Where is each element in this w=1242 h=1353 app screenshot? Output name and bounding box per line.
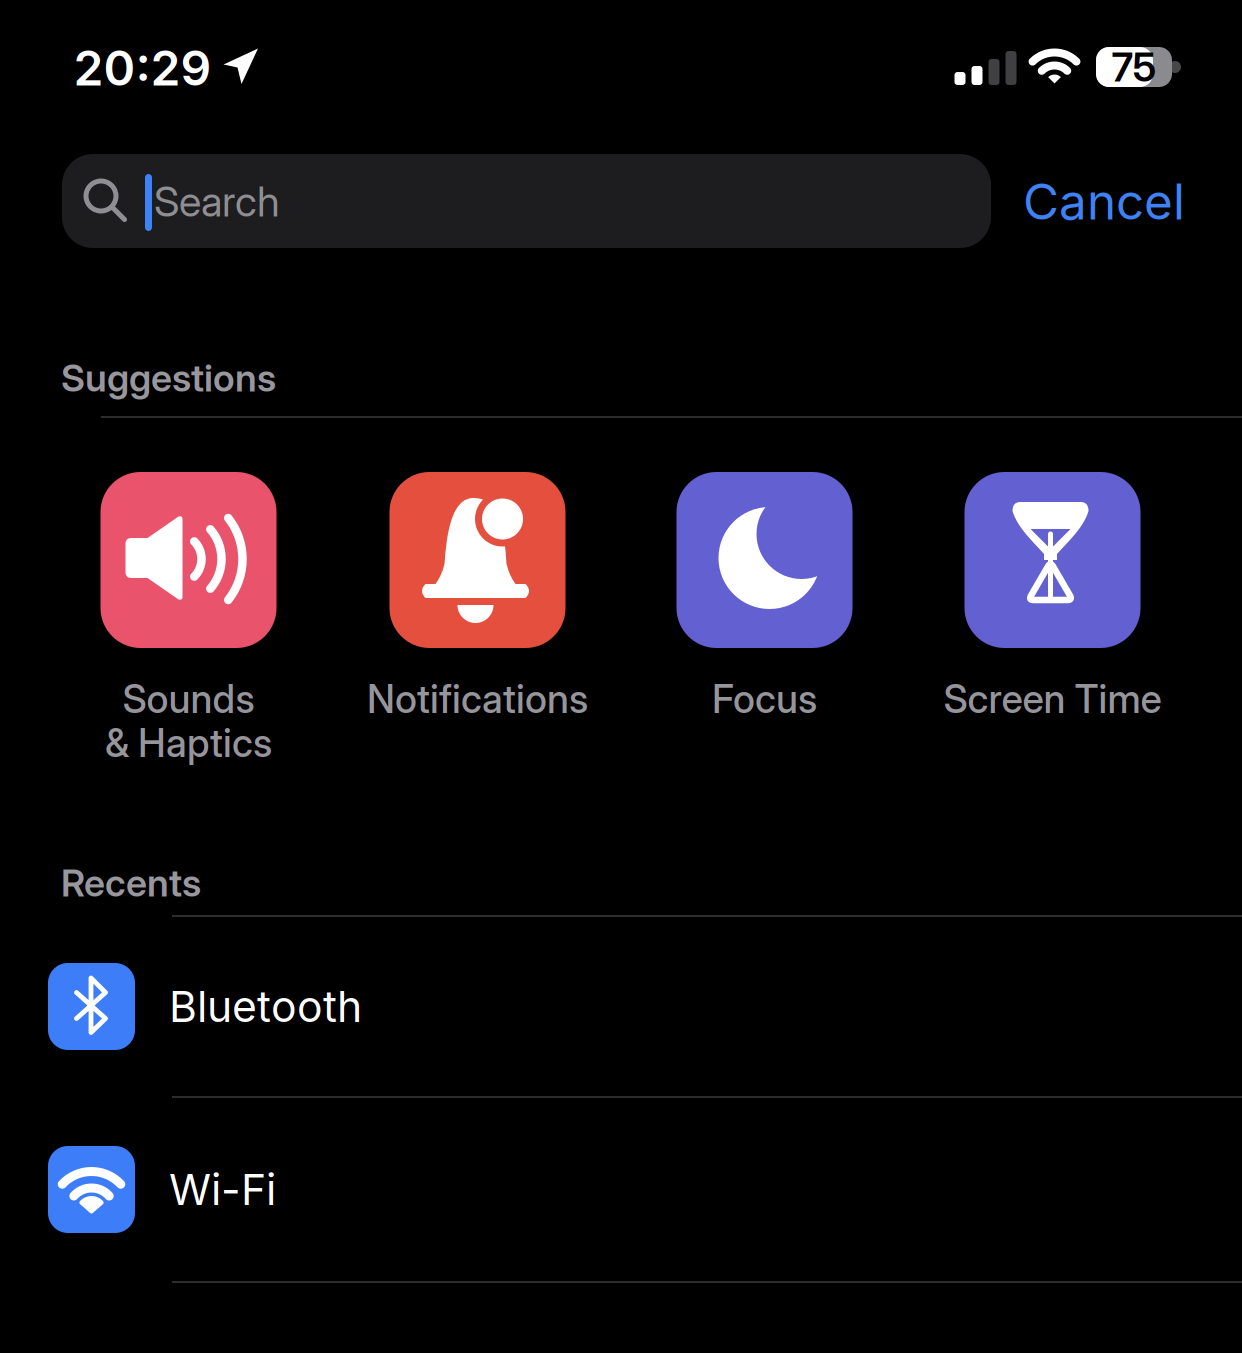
staticText: Search: [154, 177, 280, 226]
staticText: 20:29: [73, 40, 211, 96]
staticText: Focus: [712, 676, 817, 722]
staticText: Cancel: [1023, 172, 1185, 231]
staticText: Recents: [61, 861, 201, 905]
staticText: & Haptics: [105, 720, 272, 766]
button[interactable]: Sounds: [43, 472, 333, 762]
button[interactable]: Wi-Fi: [0, 1099, 1242, 1280]
staticText: Sounds: [122, 676, 254, 722]
staticText: Notifications: [367, 676, 588, 722]
button[interactable]: Cancel: [1023, 172, 1185, 231]
staticText: Wi-Fi: [169, 1164, 276, 1215]
staticText: Screen Time: [943, 676, 1161, 722]
button[interactable]: Notifications: [332, 472, 622, 762]
staticText: Suggestions: [61, 356, 276, 400]
button[interactable]: Screen Time: [907, 472, 1197, 762]
button[interactable]: Focus: [619, 472, 909, 762]
button[interactable]: Search: [62, 154, 991, 248]
button[interactable]: Bluetooth: [0, 916, 1242, 1097]
staticText: Bluetooth: [169, 981, 362, 1032]
staticText: 75: [1111, 43, 1156, 91]
